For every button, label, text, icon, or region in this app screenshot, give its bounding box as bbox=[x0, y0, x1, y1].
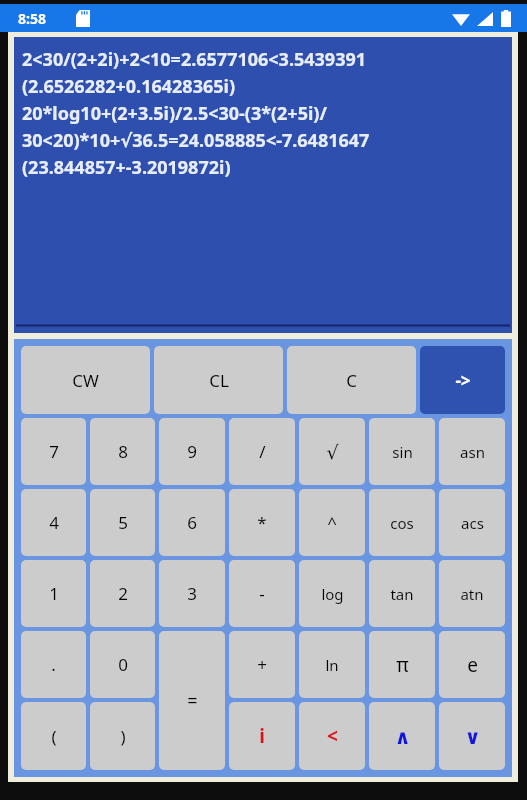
button[interactable]: 2 bbox=[90, 560, 155, 627]
button[interactable]: < bbox=[299, 702, 365, 770]
button[interactable]: 3 bbox=[159, 560, 225, 627]
staticText: tan bbox=[390, 584, 414, 604]
staticText: = bbox=[187, 688, 198, 713]
staticText: 8 bbox=[118, 440, 128, 463]
staticText: C bbox=[346, 369, 357, 392]
button[interactable]: 7 bbox=[21, 418, 86, 485]
staticText: ) bbox=[120, 725, 126, 748]
staticText: ( bbox=[51, 725, 57, 748]
staticText: 4 bbox=[49, 511, 59, 534]
staticText: - bbox=[259, 582, 265, 605]
button[interactable]: i bbox=[229, 702, 295, 770]
staticText: -> bbox=[455, 369, 471, 392]
staticText: cos bbox=[390, 513, 414, 533]
button[interactable]: acs bbox=[439, 489, 505, 556]
staticText: < bbox=[327, 723, 338, 749]
staticText: ∧ bbox=[394, 725, 411, 748]
button[interactable]: √ bbox=[299, 418, 365, 485]
button[interactable]: log bbox=[299, 560, 365, 627]
staticText: 30<20)*10+√36.5=24.058885<-7.6481647 bbox=[22, 128, 512, 153]
staticText: / bbox=[259, 440, 266, 463]
staticText: 6 bbox=[187, 511, 197, 534]
staticText: acs bbox=[461, 513, 484, 533]
button[interactable]: + bbox=[229, 631, 295, 698]
button[interactable]: ^ bbox=[299, 489, 365, 556]
button[interactable]: sin bbox=[369, 418, 435, 485]
staticText: 9 bbox=[187, 440, 197, 463]
staticText: 5 bbox=[118, 511, 128, 534]
staticText: CW bbox=[72, 369, 99, 392]
staticText: CL bbox=[209, 369, 229, 392]
staticText: 3 bbox=[187, 582, 197, 605]
staticText: 1 bbox=[49, 582, 59, 605]
button[interactable]: * bbox=[229, 489, 295, 556]
button[interactable]: 4 bbox=[21, 489, 86, 556]
staticText: atn bbox=[460, 584, 484, 604]
button[interactable]: e bbox=[439, 631, 505, 698]
staticText: 2<30/(2+2i)+2<10=2.6577106<3.5439391 bbox=[22, 47, 512, 72]
button[interactable]: 9 bbox=[159, 418, 225, 485]
staticText: ∨ bbox=[464, 725, 481, 748]
button[interactable]: . bbox=[21, 631, 86, 698]
staticText: i bbox=[259, 723, 265, 749]
staticText: (2.6526282+0.16428365i) bbox=[22, 74, 512, 99]
button[interactable]: tan bbox=[369, 560, 435, 627]
button[interactable]: 0 bbox=[90, 631, 155, 698]
button[interactable]: 5 bbox=[90, 489, 155, 556]
staticText: asn bbox=[460, 442, 485, 462]
staticText: e bbox=[467, 652, 478, 678]
staticText: 2 bbox=[118, 582, 128, 605]
button[interactable]: 1 bbox=[21, 560, 86, 627]
staticText: 20*log10+(2+3.5i)/2.5<30-(3*(2+5i)/ bbox=[22, 101, 512, 126]
button[interactable]: ∨ bbox=[439, 702, 505, 770]
button[interactable]: atn bbox=[439, 560, 505, 627]
button[interactable]: - bbox=[229, 560, 295, 627]
button[interactable]: 8 bbox=[90, 418, 155, 485]
button[interactable]: = bbox=[159, 631, 225, 770]
staticText: √ bbox=[326, 441, 339, 463]
button[interactable]: / bbox=[229, 418, 295, 485]
button[interactable]: ln bbox=[299, 631, 365, 698]
button[interactable]: asn bbox=[439, 418, 505, 485]
button[interactable]: 6 bbox=[159, 489, 225, 556]
staticText: . bbox=[51, 653, 56, 676]
button[interactable]: cos bbox=[369, 489, 435, 556]
button[interactable]: C bbox=[287, 346, 416, 414]
staticText: log bbox=[321, 584, 344, 604]
button[interactable]: ) bbox=[90, 702, 155, 770]
staticText: * bbox=[257, 511, 267, 534]
staticText: 8:58 bbox=[18, 9, 46, 28]
button[interactable]: CW bbox=[21, 346, 150, 414]
button[interactable]: ∧ bbox=[369, 702, 435, 770]
button[interactable]: CL bbox=[154, 346, 283, 414]
staticText: + bbox=[257, 653, 267, 676]
button[interactable]: ( bbox=[21, 702, 86, 770]
staticText: ^ bbox=[327, 511, 337, 534]
staticText: 0 bbox=[118, 653, 128, 676]
button[interactable]: π bbox=[369, 631, 435, 698]
staticText: ln bbox=[325, 655, 339, 675]
staticText: sin bbox=[392, 442, 413, 462]
button[interactable]: -> bbox=[420, 346, 505, 414]
staticText: 7 bbox=[49, 440, 59, 463]
staticText: π bbox=[396, 652, 409, 678]
staticText: (23.844857+-3.2019872i) bbox=[22, 155, 512, 180]
